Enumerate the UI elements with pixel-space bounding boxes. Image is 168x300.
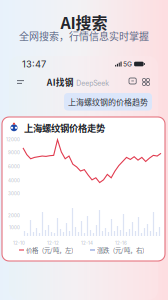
staticText: AI搜索 bbox=[60, 10, 107, 34]
staticText: 上海螺纹钢的价格趋势 bbox=[68, 96, 148, 108]
staticText: 4000 bbox=[8, 178, 20, 183]
staticText: DeepSeek bbox=[76, 79, 109, 87]
staticText: 9000 bbox=[8, 150, 20, 155]
button[interactable]: Menu bbox=[17, 77, 27, 87]
staticText: AI找钢 bbox=[47, 76, 74, 88]
staticText: 12-12 bbox=[47, 240, 59, 246]
staticText: 上海螺纹钢价格走势 bbox=[24, 121, 105, 134]
staticText: 12-16 bbox=[115, 240, 127, 246]
staticText: 12-10 bbox=[13, 240, 25, 246]
staticText: 全网搜索，行情信息实时掌握 bbox=[19, 29, 149, 43]
button[interactable]: Messages bbox=[129, 78, 137, 86]
staticText: 2000 bbox=[8, 213, 20, 218]
staticText: 12-14 bbox=[81, 240, 93, 246]
staticText: 涨跌（元/吨，右） bbox=[97, 245, 148, 255]
staticText: 6000 bbox=[8, 164, 20, 169]
staticText: 3000 bbox=[8, 191, 20, 196]
staticText: 价格（元/吨，左） bbox=[26, 245, 77, 255]
staticText: 5G bbox=[123, 60, 132, 68]
staticText: 1000 bbox=[9, 225, 20, 230]
staticText: 12000 bbox=[6, 137, 20, 142]
staticText: 13:47 bbox=[22, 58, 46, 70]
button[interactable]: Scan bbox=[142, 78, 150, 86]
